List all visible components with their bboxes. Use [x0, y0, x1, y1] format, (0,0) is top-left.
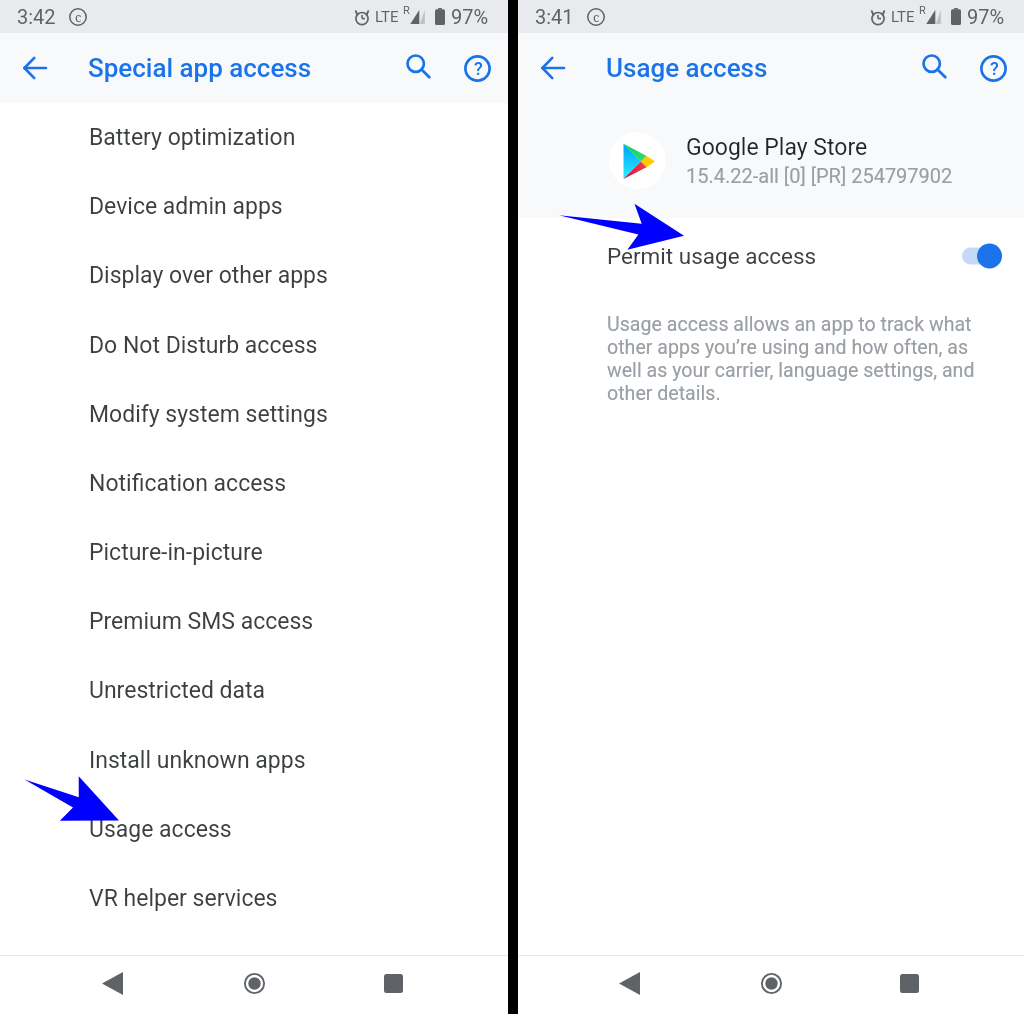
button[interactable]: Navigate up — [526, 41, 580, 95]
staticText: 97% — [967, 5, 1005, 28]
staticText: c — [593, 8, 600, 26]
button[interactable]: Premium SMS access — [0, 587, 508, 656]
button[interactable]: Help — [969, 44, 1017, 92]
button[interactable]: Notification access — [0, 449, 508, 518]
staticText: Usage access allows an app to track what… — [607, 313, 992, 405]
button[interactable]: Help — [453, 44, 501, 92]
button[interactable]: Battery optimization — [0, 103, 508, 172]
button[interactable]: Install unknown apps — [0, 726, 508, 795]
button[interactable]: Permit usage access toggle — [960, 241, 1004, 271]
staticText: ? — [990, 58, 999, 79]
button[interactable]: Google Play Store — [518, 103, 1024, 218]
button[interactable]: Picture-in-picture — [0, 518, 508, 587]
button[interactable]: Back — [597, 954, 661, 1012]
button[interactable]: VR helper services — [0, 864, 508, 933]
button[interactable]: Back — [80, 954, 144, 1012]
button[interactable]: Do Not Disturb access — [0, 311, 508, 380]
staticText: LTE — [891, 8, 915, 26]
button[interactable]: Navigate up — [8, 41, 62, 95]
staticText: VR helper services — [89, 885, 278, 912]
staticText: Modify system settings — [89, 401, 328, 428]
button[interactable]: Usage access — [0, 795, 508, 864]
staticText: LTE — [375, 8, 399, 26]
staticText: Picture-in-picture — [89, 539, 263, 566]
staticText: Display over other apps — [89, 262, 328, 289]
button[interactable]: Search — [396, 44, 444, 92]
staticText: Unrestricted data — [89, 677, 266, 704]
button[interactable]: Home — [739, 954, 803, 1012]
button[interactable]: Recent apps — [361, 954, 425, 1012]
staticText: Device admin apps — [89, 193, 283, 220]
staticText: ? — [474, 58, 483, 79]
staticText: Install unknown apps — [89, 747, 306, 774]
button[interactable]: Unrestricted data — [0, 656, 508, 725]
staticText: Premium SMS access — [89, 608, 314, 635]
staticText: Usage access — [606, 53, 768, 83]
staticText: Google Play Store — [686, 134, 868, 161]
staticText: Usage access — [89, 816, 232, 843]
button[interactable]: Recent apps — [877, 954, 941, 1012]
staticText: Battery optimization — [89, 124, 296, 151]
button[interactable]: Display over other apps — [0, 241, 508, 310]
staticText: 97% — [451, 5, 489, 28]
staticText: 3:41 — [535, 5, 574, 28]
button[interactable]: Home — [222, 954, 286, 1012]
staticText: R — [919, 4, 926, 17]
staticText: c — [75, 8, 82, 26]
button[interactable]: Search — [912, 44, 960, 92]
button[interactable]: Device admin apps — [0, 172, 508, 241]
button[interactable]: Modify system settings — [0, 380, 508, 449]
staticText: Notification access — [89, 470, 287, 497]
staticText: R — [403, 4, 410, 17]
staticText: Special app access — [88, 53, 312, 83]
staticText: 3:42 — [17, 5, 56, 28]
staticText: Permit usage access — [607, 243, 817, 269]
staticText: Do Not Disturb access — [89, 332, 318, 359]
button[interactable]: Permit usage access — [518, 218, 1024, 297]
staticText: 15.4.22-all [0] [PR] 254797902 — [686, 164, 953, 187]
